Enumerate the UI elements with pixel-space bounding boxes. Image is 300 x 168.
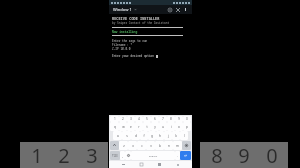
button[interactable]: 0 <box>183 116 191 122</box>
staticText: Enter your desired option <box>112 54 156 58</box>
button[interactable]: 8 <box>200 142 288 168</box>
button[interactable]: e <box>127 122 135 131</box>
button[interactable]: v <box>146 141 155 150</box>
button[interactable]: z <box>119 141 128 150</box>
button[interactable]: Keyboard settings <box>125 151 131 160</box>
staticText: d <box>135 134 137 138</box>
staticText: 9 <box>178 117 180 121</box>
button[interactable]: Close window <box>174 6 182 14</box>
button[interactable]: y <box>151 122 159 131</box>
button[interactable]: 1 <box>26 142 48 168</box>
staticText: u <box>162 125 164 129</box>
staticText: 5 <box>146 117 148 121</box>
button[interactable]: 1 <box>20 142 108 168</box>
staticText: v <box>150 144 152 148</box>
button[interactable]: 3 <box>81 142 103 168</box>
staticText: 4 <box>138 117 140 121</box>
button[interactable]: 9 <box>175 116 183 122</box>
button[interactable]: o <box>175 122 183 131</box>
button[interactable]: Window 1 <box>112 6 138 13</box>
staticText: a <box>117 134 119 138</box>
staticText: Enter the args to run <box>112 39 148 43</box>
staticText: b <box>159 144 161 148</box>
button[interactable]: b <box>155 141 164 150</box>
staticText: o <box>178 125 180 129</box>
button[interactable]: 6 <box>151 116 159 122</box>
staticText: r <box>138 125 140 129</box>
button[interactable]: 1 <box>110 116 119 122</box>
staticText: Filename : * <box>112 43 133 47</box>
button[interactable]: m <box>173 141 182 150</box>
button[interactable]: 7 <box>159 116 167 122</box>
button[interactable]: English <box>131 151 175 160</box>
button[interactable]: i <box>167 122 175 131</box>
button[interactable]: Screenshot <box>174 161 181 168</box>
button[interactable]: u <box>159 122 167 131</box>
staticText: q <box>114 125 116 129</box>
button[interactable]: l <box>180 131 188 140</box>
button[interactable]: k <box>172 131 180 140</box>
button[interactable]: Shift <box>110 141 119 150</box>
staticText: m <box>176 144 179 148</box>
staticText: h <box>159 134 161 138</box>
staticText: p <box>186 125 188 129</box>
staticText: English <box>149 154 158 157</box>
button[interactable]: n <box>164 141 173 150</box>
button[interactable]: 3 <box>127 116 135 122</box>
staticText: s <box>126 134 128 138</box>
staticText: 1 <box>114 117 116 121</box>
staticText: y <box>154 125 156 129</box>
button[interactable]: More options <box>182 6 189 13</box>
button[interactable]: . <box>175 151 180 160</box>
button[interactable]: f <box>140 131 148 140</box>
button[interactable]: r <box>135 122 143 131</box>
staticText: t <box>146 125 148 129</box>
staticText: 8 <box>211 142 223 168</box>
staticText: g <box>151 134 153 138</box>
button[interactable]: 5 <box>143 116 151 122</box>
button[interactable]: 8 <box>167 116 175 122</box>
staticText: e <box>130 125 132 129</box>
button[interactable]: a <box>113 131 122 140</box>
button[interactable]: Recents <box>156 161 163 168</box>
button[interactable]: s <box>122 131 131 140</box>
button[interactable]: Back <box>120 161 127 168</box>
staticText: w <box>122 125 125 129</box>
button[interactable]: c <box>137 141 146 150</box>
button[interactable]: 0 <box>261 142 283 168</box>
button[interactable]: Home <box>138 161 145 168</box>
staticText: z <box>123 144 125 148</box>
button[interactable]: t <box>143 122 151 131</box>
button[interactable]: , <box>120 151 125 160</box>
button[interactable]: 2 <box>119 116 127 122</box>
staticText: x <box>132 144 134 148</box>
button[interactable]: 4 <box>135 116 143 122</box>
staticText: . <box>177 153 178 158</box>
button[interactable]: ?123 <box>110 151 120 160</box>
button[interactable]: h <box>156 131 164 140</box>
button[interactable]: q <box>110 122 119 131</box>
staticText: Z-IP 10.0.0 <box>112 47 131 51</box>
button[interactable]: 8 <box>206 142 228 168</box>
button[interactable]: j <box>164 131 172 140</box>
staticText: 3 <box>86 142 98 168</box>
button[interactable]: d <box>131 131 140 140</box>
staticText: , <box>122 153 123 158</box>
button[interactable]: p <box>183 122 191 131</box>
staticText: ?123 <box>112 154 118 158</box>
staticText: 2 <box>58 142 70 168</box>
button[interactable]: 2 <box>53 142 75 168</box>
button[interactable]: 9 <box>233 142 255 168</box>
button[interactable]: Settings <box>166 6 174 14</box>
staticText: 2 <box>122 117 124 121</box>
staticText: 9 <box>238 142 250 168</box>
staticText: 6 <box>154 117 156 121</box>
staticText: RECEIVE CODE INSTALLER <box>112 16 160 21</box>
staticText: l <box>184 134 185 138</box>
button[interactable]: Backspace <box>182 141 191 150</box>
button[interactable]: x <box>128 141 137 150</box>
button[interactable]: w <box>119 122 127 131</box>
button[interactable]: g <box>148 131 156 140</box>
staticText: 1 <box>31 142 43 168</box>
button[interactable]: Enter <box>180 151 191 160</box>
